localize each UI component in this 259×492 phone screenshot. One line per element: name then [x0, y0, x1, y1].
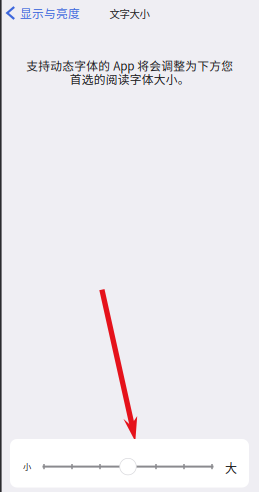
staticText: 支持动态字体的 App 将会调整为下方您 首选的阅读字体大小。	[26, 57, 233, 87]
staticText: 大	[225, 459, 237, 476]
staticText: 显示与亮度	[20, 4, 80, 21]
staticText: 文字大小	[109, 6, 149, 21]
button[interactable]: 显示与亮度	[0, 0, 80, 25]
staticText: 小	[23, 460, 31, 472]
